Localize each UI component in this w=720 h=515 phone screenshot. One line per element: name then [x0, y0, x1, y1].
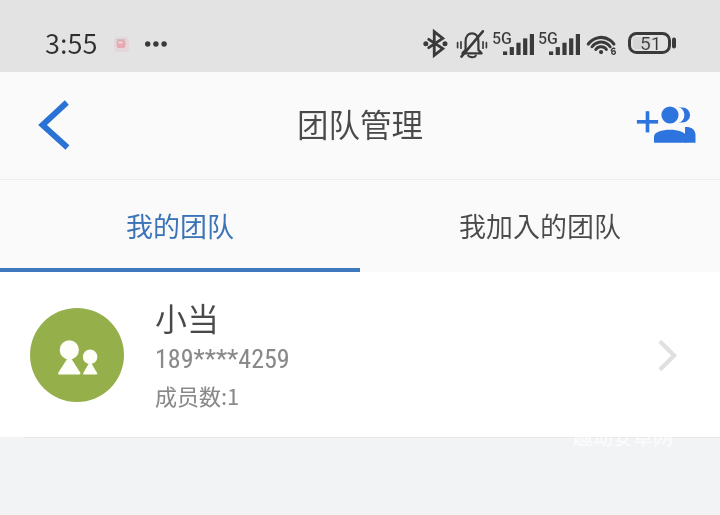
- button[interactable]: 小当: [0, 272, 720, 437]
- staticText: 3:55: [45, 23, 98, 62]
- staticText: 我加入的团队: [459, 206, 621, 245]
- staticText: 5G: [492, 29, 512, 48]
- button[interactable]: Back: [12, 82, 96, 168]
- staticText: 我的团队: [126, 206, 234, 245]
- staticText: 趣动安卓网: [573, 422, 673, 451]
- staticText: 成员数:1: [155, 379, 240, 411]
- button[interactable]: 我的团队: [0, 179, 360, 272]
- staticText: 团队管理: [297, 100, 424, 146]
- staticText: 5G: [538, 29, 558, 48]
- button[interactable]: 我加入的团队: [360, 179, 720, 272]
- button[interactable]: Add member: [620, 78, 710, 173]
- staticText: 189****4259: [155, 344, 290, 374]
- staticText: 51: [640, 32, 662, 54]
- staticText: 小当: [155, 294, 220, 340]
